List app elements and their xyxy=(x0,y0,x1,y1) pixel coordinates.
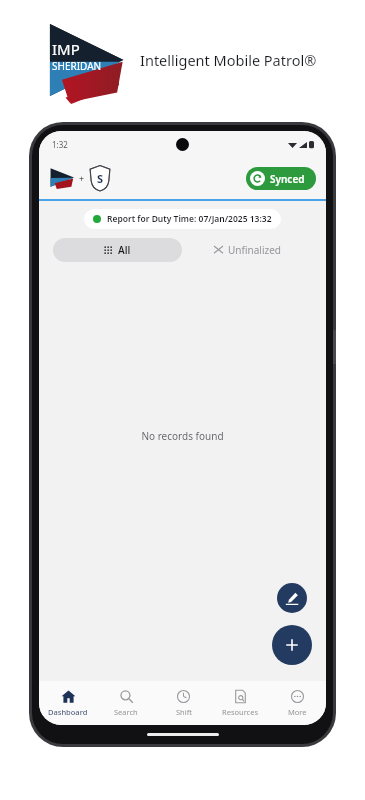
staticText: Shift xyxy=(176,707,192,717)
staticText: S xyxy=(97,171,104,186)
staticText: SHERIDAN xyxy=(52,59,102,73)
button[interactable]: More xyxy=(269,681,326,725)
staticText: Synced xyxy=(270,172,305,186)
button[interactable]: All xyxy=(53,238,182,262)
staticText: Report for Duty Time: 07/Jan/2025 13:32 xyxy=(107,213,272,225)
button[interactable]: Report for Duty Time: 07/Jan/2025 13:32 xyxy=(84,209,281,229)
button[interactable]: Unfinalized xyxy=(182,238,312,262)
button[interactable]: Add xyxy=(272,625,312,665)
button[interactable]: Search xyxy=(97,681,155,725)
staticText: Resources xyxy=(222,707,259,717)
staticText: 1:32 xyxy=(52,139,68,150)
button[interactable]: Resources xyxy=(212,681,269,725)
staticText: Intelligent Mobile Patrol® xyxy=(140,50,317,70)
button[interactable]: Shift xyxy=(155,681,212,725)
button[interactable]: Sign xyxy=(277,583,307,613)
staticText: No records found xyxy=(141,429,224,443)
button[interactable]: Synced xyxy=(246,167,316,190)
staticText: Search xyxy=(114,707,138,717)
staticText: Unfinalized xyxy=(228,243,281,257)
staticText: All xyxy=(118,243,131,257)
staticText: + xyxy=(79,172,85,184)
staticText: More xyxy=(288,707,307,717)
staticText: Dashboard xyxy=(48,707,88,717)
staticText: IMP xyxy=(52,39,80,59)
button[interactable]: Dashboard xyxy=(39,681,97,725)
